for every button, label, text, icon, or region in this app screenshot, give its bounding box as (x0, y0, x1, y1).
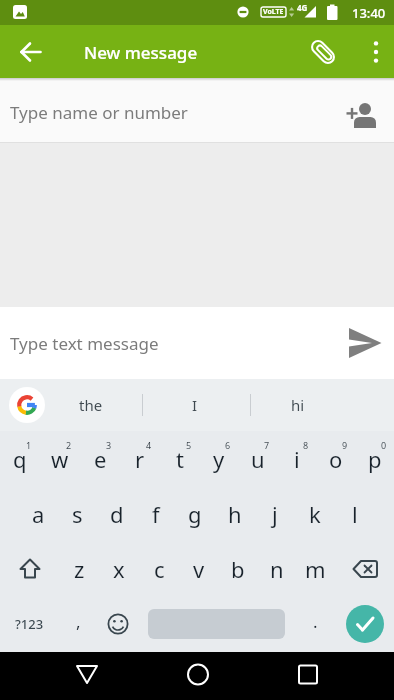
button[interactable]: b (218, 541, 257, 596)
staticText: w (51, 444, 69, 474)
staticText: 6 (225, 439, 231, 451)
button[interactable]: m (296, 541, 335, 596)
staticText: o (329, 444, 343, 474)
staticText: y (213, 444, 225, 474)
button[interactable] (342, 94, 380, 132)
button[interactable] (305, 34, 341, 70)
staticText: VoLTE (263, 7, 284, 17)
staticText: i (294, 444, 300, 474)
button[interactable]: c (139, 541, 179, 596)
staticText: 4G (297, 2, 308, 13)
staticText: t (176, 444, 184, 474)
button[interactable] (352, 34, 388, 70)
staticText: s (72, 499, 83, 529)
staticText: hi (291, 395, 305, 415)
button[interactable] (343, 321, 387, 365)
staticText: a (32, 499, 45, 529)
staticText: d (110, 499, 124, 529)
staticText: x (113, 554, 125, 584)
staticText: n (270, 554, 284, 584)
staticText: 13:40 (352, 4, 386, 22)
staticText: k (309, 499, 321, 529)
button[interactable]: , (59, 596, 98, 652)
button[interactable]: q (0, 431, 40, 486)
button[interactable]: . (295, 596, 335, 652)
button[interactable]: i (277, 431, 316, 486)
staticText: 9 (342, 439, 348, 451)
staticText: e (94, 444, 107, 474)
staticText: . (313, 610, 318, 633)
button[interactable]: hi (267, 379, 329, 431)
button[interactable] (65, 652, 109, 696)
button[interactable]: o (316, 431, 355, 486)
staticText: 3 (106, 439, 112, 451)
button[interactable]: k (295, 486, 335, 541)
button[interactable]: y (199, 431, 238, 486)
button[interactable]: r (120, 431, 160, 486)
button[interactable]: f (136, 486, 175, 541)
staticText: New message (84, 41, 198, 64)
staticText: 1 (26, 439, 32, 451)
staticText: u (251, 444, 265, 474)
staticText: c (154, 554, 165, 584)
button[interactable] (335, 541, 394, 596)
staticText: m (305, 554, 326, 584)
staticText: the (79, 395, 103, 415)
button[interactable]: I (164, 379, 226, 431)
button[interactable] (346, 605, 384, 643)
staticText: ?123 (15, 615, 44, 633)
button[interactable]: e (80, 431, 120, 486)
staticText: z (74, 554, 85, 584)
button[interactable] (286, 652, 330, 696)
button[interactable]: h (215, 486, 255, 541)
button[interactable]: j (255, 486, 295, 541)
button[interactable]: l (335, 486, 375, 541)
button[interactable]: Type name or number (0, 78, 394, 143)
button[interactable] (176, 652, 220, 696)
button[interactable]: p (355, 431, 394, 486)
staticText: 2 (66, 439, 72, 451)
button[interactable]: u (238, 431, 277, 486)
staticText: h (228, 499, 242, 529)
staticText: 5 (186, 439, 192, 451)
button[interactable] (13, 34, 49, 70)
button[interactable]: t (160, 431, 199, 486)
button[interactable]: w (40, 431, 80, 486)
staticText: 4 (146, 439, 152, 451)
button[interactable]: ?123 (0, 596, 59, 652)
button[interactable]: g (175, 486, 215, 541)
staticText: p (368, 444, 382, 474)
staticText: r (135, 444, 145, 474)
staticText: l (352, 499, 358, 529)
button[interactable] (9, 387, 45, 423)
staticText: v (193, 554, 205, 584)
button[interactable]: n (257, 541, 296, 596)
staticText: Type name or number (10, 101, 188, 124)
staticText: 8 (303, 439, 309, 451)
button[interactable] (98, 596, 138, 652)
button[interactable]: d (97, 486, 136, 541)
staticText: g (188, 499, 202, 529)
button[interactable]: z (59, 541, 99, 596)
button[interactable]: Type text message (0, 307, 394, 379)
button[interactable]: a (19, 486, 58, 541)
button[interactable]: s (58, 486, 97, 541)
staticText: j (272, 499, 278, 529)
button[interactable]: v (179, 541, 218, 596)
staticText: , (76, 610, 81, 633)
staticText: Type text message (10, 332, 159, 355)
staticText: q (13, 444, 27, 474)
staticText: 7 (264, 439, 270, 451)
button[interactable]: x (99, 541, 139, 596)
staticText: b (231, 554, 245, 584)
staticText: f (152, 499, 160, 529)
button[interactable] (0, 541, 59, 596)
staticText: I (192, 395, 198, 415)
staticText: 0 (381, 439, 387, 451)
button[interactable]: the (60, 379, 122, 431)
